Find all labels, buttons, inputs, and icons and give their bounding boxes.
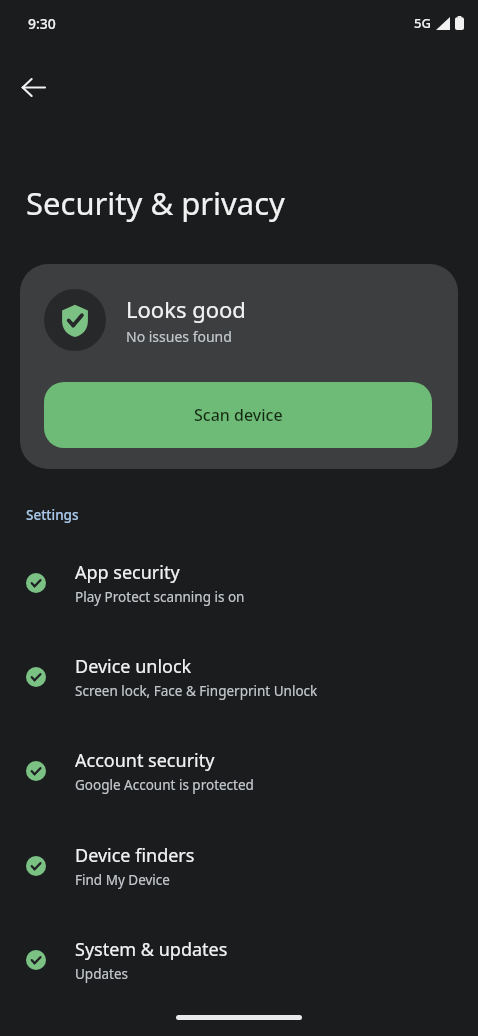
staticText: System & updates: [75, 937, 228, 962]
staticText: Screen lock, Face & Fingerprint Unlock: [75, 682, 318, 700]
staticText: 5G: [414, 14, 431, 32]
button[interactable]: Back: [10, 64, 56, 110]
staticText: 9:30: [28, 14, 56, 33]
staticText: Security & privacy: [26, 182, 285, 224]
staticText: App security: [75, 560, 180, 585]
button[interactable]: System & updates: [0, 922, 478, 998]
staticText: Scan device: [194, 404, 283, 426]
staticText: Play Protect scanning is on: [75, 588, 245, 606]
staticText: Device finders: [75, 843, 195, 868]
staticText: Find My Device: [75, 871, 170, 889]
button[interactable]: Scan device: [44, 382, 432, 448]
staticText: Looks good: [126, 294, 246, 324]
staticText: Google Account is protected: [75, 776, 254, 794]
staticText: Device unlock: [75, 654, 192, 679]
staticText: Account security: [75, 748, 215, 773]
button[interactable]: Device finders: [0, 828, 478, 904]
staticText: Updates: [75, 965, 129, 983]
button[interactable]: Device unlock: [0, 639, 478, 715]
button[interactable]: App security: [0, 545, 478, 621]
staticText: Settings: [26, 506, 79, 524]
staticText: No issues found: [126, 327, 232, 346]
button[interactable]: Account security: [0, 733, 478, 809]
